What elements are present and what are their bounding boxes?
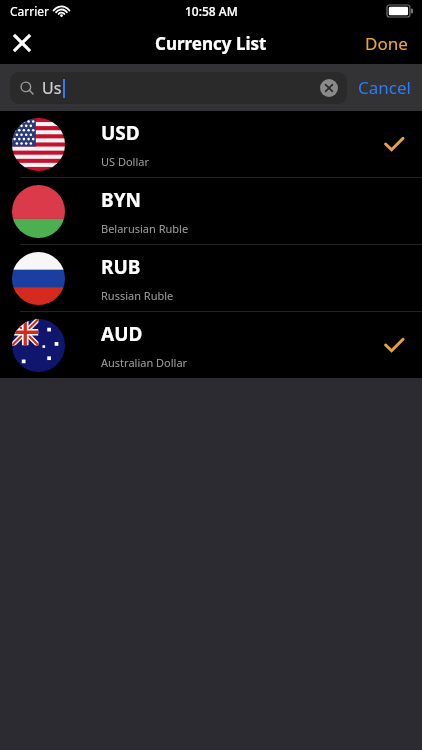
staticText: Russian Ruble: [101, 288, 174, 303]
staticText: Currency List: [155, 32, 267, 55]
button[interactable]: Us: [10, 72, 347, 104]
staticText: Us: [42, 77, 62, 99]
button[interactable]: Clear search: [314, 73, 344, 103]
button[interactable]: AUD: [0, 312, 422, 378]
staticText: Carrier: [10, 3, 50, 19]
button[interactable]: USD: [0, 111, 422, 177]
staticText: Belarusian Ruble: [101, 221, 189, 236]
button[interactable]: BYN: [0, 178, 422, 244]
button[interactable]: Cancel: [347, 68, 422, 107]
staticText: 10:58 AM: [185, 3, 238, 19]
staticText: USD: [101, 120, 140, 146]
other: Selected: [372, 323, 416, 367]
button[interactable]: RUB: [0, 245, 422, 311]
button[interactable]: Done: [351, 24, 422, 63]
staticText: Cancel: [358, 76, 411, 99]
button[interactable]: Close: [0, 22, 44, 64]
staticText: Done: [365, 32, 408, 55]
staticText: BYN: [101, 187, 141, 213]
other: Selected: [372, 122, 416, 166]
staticText: US Dollar: [101, 154, 150, 169]
staticText: AUD: [101, 321, 143, 347]
staticText: Australian Dollar: [101, 355, 188, 370]
staticText: RUB: [101, 254, 141, 280]
